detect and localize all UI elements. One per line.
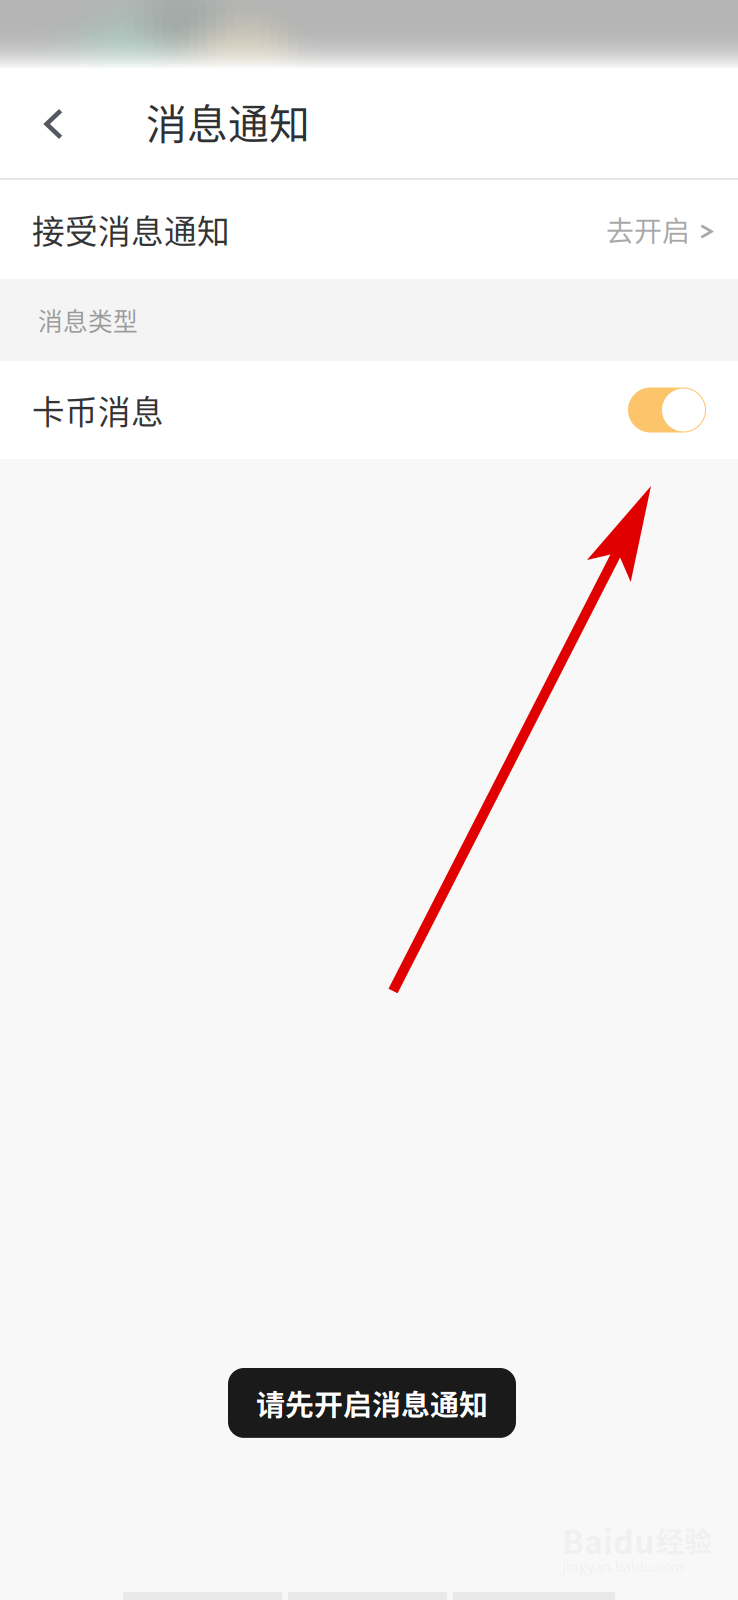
- button[interactable]: Back: [0, 68, 738, 180]
- staticText: Baidu: [562, 1517, 654, 1563]
- button[interactable]: 请先开启消息通知: [228, 1368, 516, 1438]
- staticText: 卡币消息: [32, 386, 164, 433]
- staticText: 去开启: [606, 209, 690, 250]
- staticText: 接受消息通知: [32, 206, 230, 253]
- button[interactable]: 卡币消息: [0, 361, 738, 459]
- staticText: 消息类型: [38, 302, 138, 338]
- staticText: 经验: [656, 1520, 712, 1560]
- staticText: 消息通知: [146, 92, 310, 151]
- button[interactable]: 接受消息通知: [0, 180, 738, 279]
- staticText: 请先开启消息通知: [256, 1382, 488, 1424]
